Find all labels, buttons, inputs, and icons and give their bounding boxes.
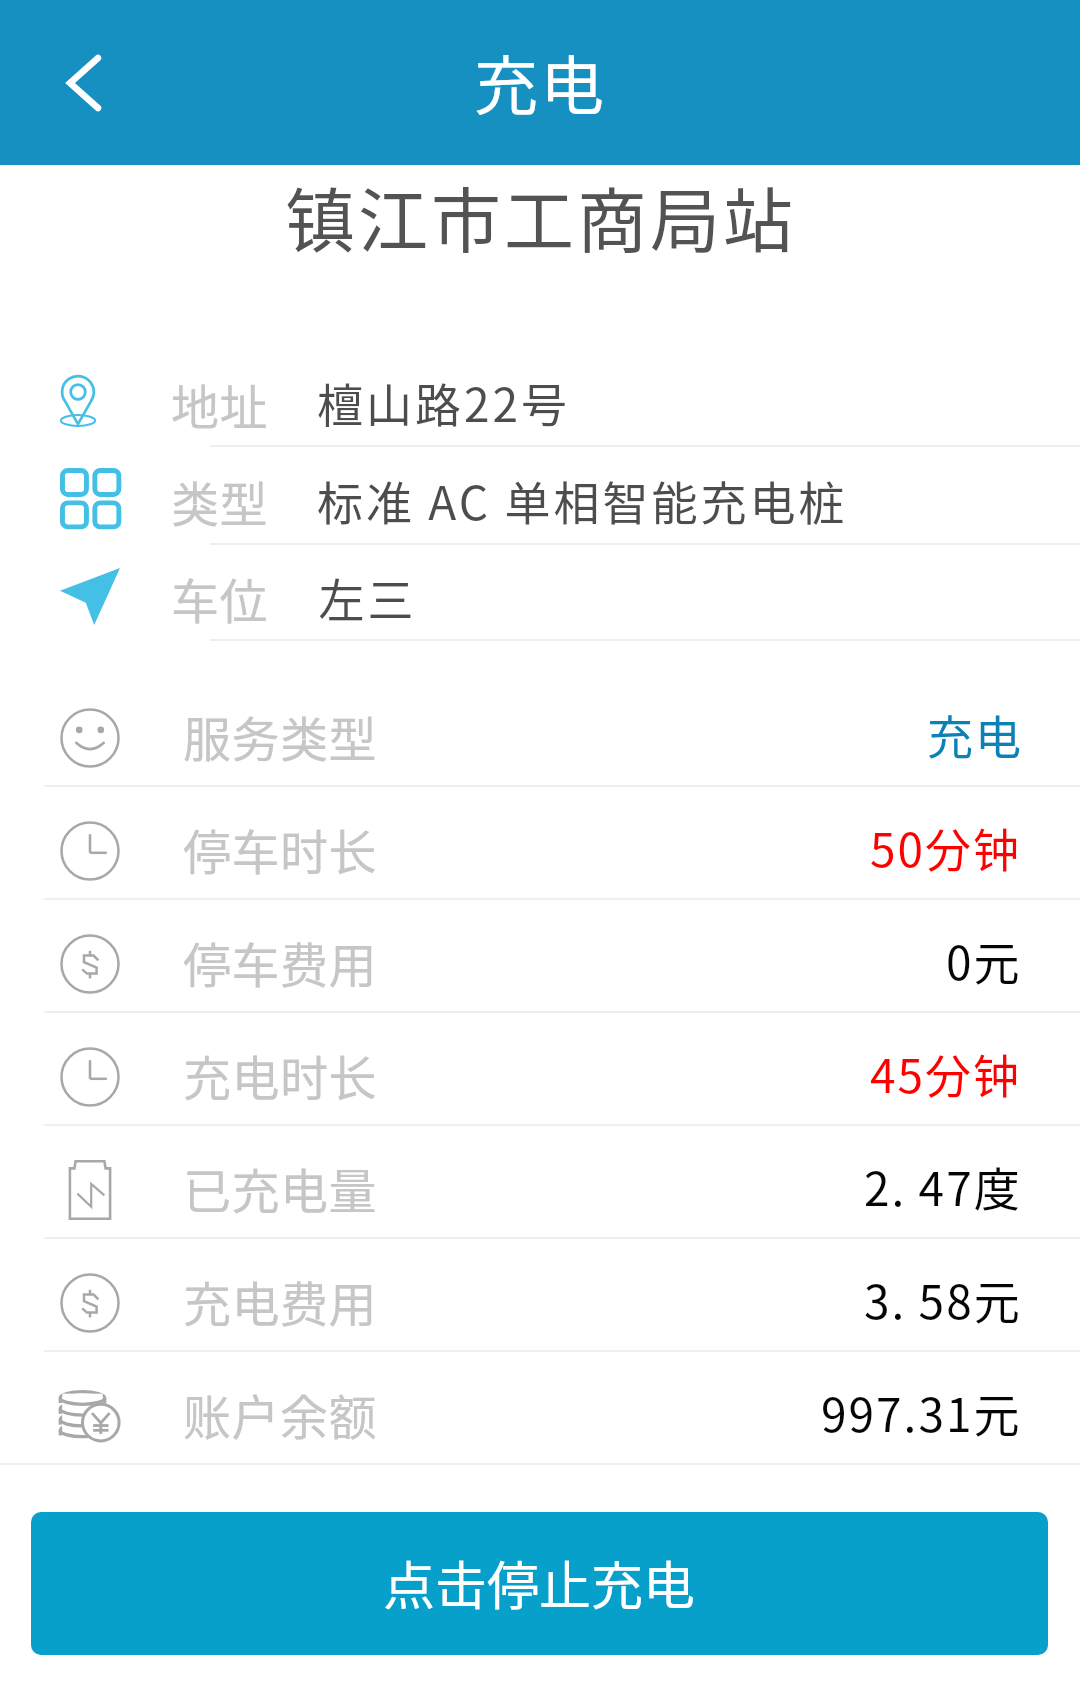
button[interactable]: 车位	[0, 545, 1080, 641]
button[interactable]: 点击停止充电	[31, 1512, 1048, 1655]
staticText: 标准 AC 单相智能充电桩	[317, 467, 848, 534]
staticText: 类型	[171, 466, 269, 536]
staticText: 车位	[171, 563, 269, 633]
button[interactable]: 充电费用	[0, 1239, 1080, 1352]
staticText: 已充电量	[183, 1153, 378, 1223]
button[interactable]: 已充电量	[0, 1126, 1080, 1239]
staticText: 0元	[946, 927, 1022, 994]
staticText: 2. 47度	[864, 1153, 1022, 1220]
button[interactable]: 服务类型	[0, 674, 1080, 787]
staticText: 停车费用	[183, 927, 378, 997]
staticText: 服务类型	[183, 701, 378, 771]
staticText: 45分钟	[870, 1040, 1022, 1107]
staticText: 充电费用	[183, 1266, 378, 1336]
button[interactable]: 停车时长	[0, 787, 1080, 900]
staticText: 镇江市工商局站	[285, 166, 796, 267]
staticText: 地址	[171, 369, 269, 439]
staticText: 点击停止充电	[383, 1545, 696, 1620]
button[interactable]: Back	[38, 37, 130, 129]
button[interactable]: 账户余额	[0, 1352, 1080, 1465]
staticText: 停车时长	[183, 814, 378, 884]
button[interactable]: 停车费用	[0, 900, 1080, 1013]
staticText: 充电	[926, 701, 1022, 768]
staticText: 50分钟	[870, 814, 1022, 881]
button[interactable]: 地址	[0, 350, 1080, 447]
staticText: 充电时长	[183, 1040, 378, 1110]
staticText: 997.31元	[821, 1379, 1022, 1446]
staticText: 左三	[317, 564, 415, 631]
staticText: 充电	[474, 35, 606, 128]
staticText: 账户余额	[183, 1379, 378, 1449]
staticText: 檀山路22号	[317, 369, 571, 436]
button[interactable]: 充电时长	[0, 1013, 1080, 1126]
button[interactable]: 类型	[0, 447, 1080, 545]
staticText: 3. 58元	[864, 1266, 1022, 1333]
